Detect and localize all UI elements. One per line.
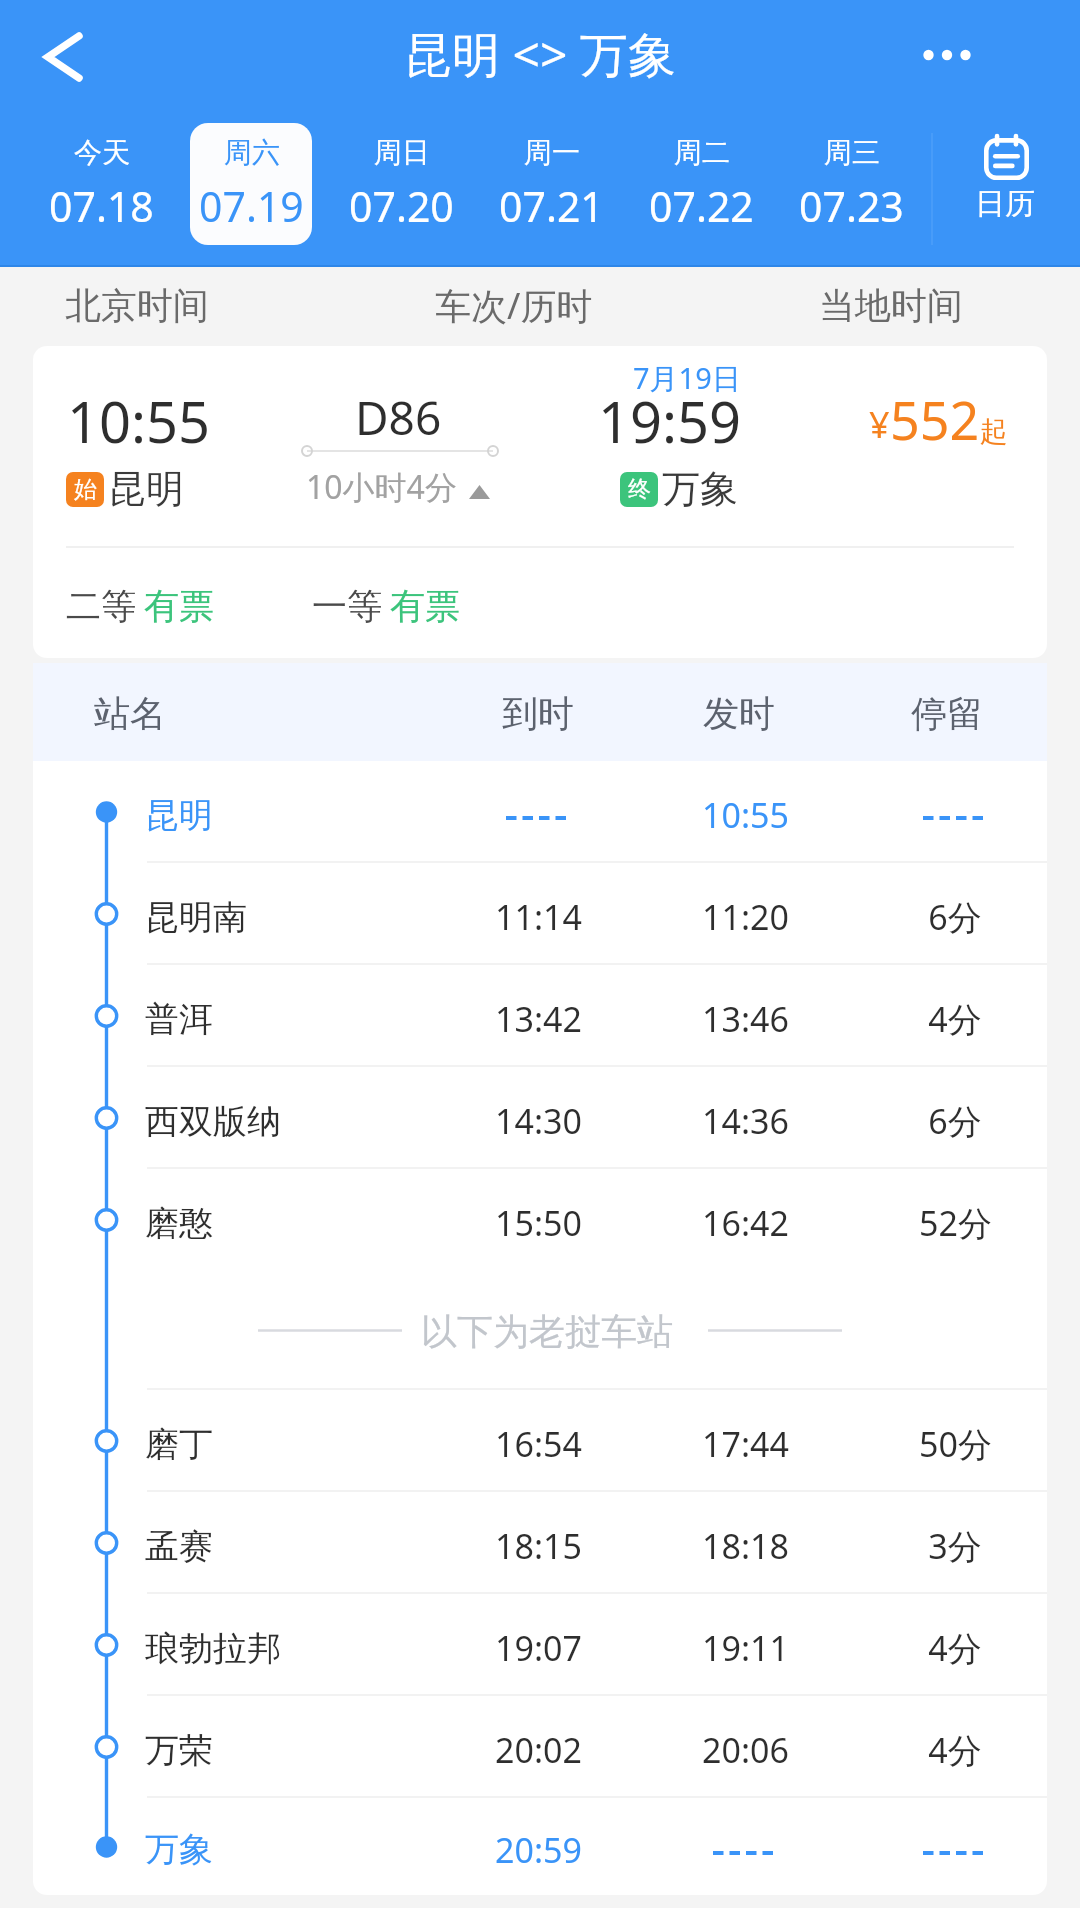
- staticText: 磨憨: [145, 1202, 213, 1245]
- button[interactable]: 10:55: [33, 346, 1047, 658]
- staticText: 10小时4分: [306, 465, 457, 509]
- staticText: 7月19日: [633, 358, 741, 398]
- staticText: 有票: [144, 584, 214, 628]
- staticText: 15:50: [495, 1200, 582, 1246]
- staticText: 6分: [928, 1098, 982, 1144]
- button[interactable]: 西双版纳: [33, 1067, 1047, 1169]
- staticText: 07.20: [349, 178, 454, 234]
- staticText: 万象: [662, 465, 738, 513]
- staticText: 16:42: [702, 1200, 789, 1246]
- staticText: 二等: [66, 584, 136, 628]
- staticText: 07.21: [499, 178, 604, 234]
- staticText: 11:20: [702, 894, 789, 940]
- button[interactable]: 今天: [26, 113, 176, 267]
- button[interactable]: 万象: [33, 1798, 1047, 1895]
- staticText: 4分: [928, 996, 982, 1042]
- button[interactable]: Back: [22, 17, 102, 97]
- staticText: 17:44: [702, 1421, 789, 1467]
- staticText: 13:46: [702, 996, 789, 1042]
- staticText: 14:36: [702, 1098, 789, 1144]
- staticText: 以下为老挝车站: [421, 1309, 673, 1354]
- button[interactable]: 琅勃拉邦: [33, 1594, 1047, 1696]
- staticText: ¥: [869, 400, 890, 449]
- button[interactable]: 周六: [176, 113, 326, 267]
- staticText: 11:14: [495, 894, 582, 940]
- staticText: 磨丁: [145, 1423, 213, 1466]
- staticText: 10:55: [67, 383, 211, 459]
- staticText: 起: [980, 414, 1008, 449]
- staticText: 4分: [928, 1625, 982, 1671]
- staticText: 孟赛: [145, 1525, 213, 1568]
- staticText: 昆明: [145, 794, 213, 837]
- staticText: 昆明: [108, 465, 184, 513]
- staticText: 普洱: [145, 998, 213, 1041]
- staticText: 万象: [145, 1828, 213, 1871]
- button[interactable]: 周一: [476, 113, 626, 267]
- staticText: 16:54: [495, 1421, 582, 1467]
- button[interactable]: Calendar: [935, 113, 1080, 267]
- staticText: 始: [74, 475, 97, 504]
- staticText: 周六: [224, 135, 280, 170]
- staticText: 552: [890, 384, 980, 455]
- button[interactable]: 普洱: [33, 965, 1047, 1067]
- staticText: 昆明南: [145, 896, 247, 939]
- button[interactable]: 磨憨: [33, 1169, 1047, 1271]
- staticText: 周三: [824, 135, 880, 170]
- staticText: 当地时间: [819, 283, 963, 328]
- staticText: 西双版纳: [145, 1100, 281, 1143]
- button[interactable]: 昆明南: [33, 863, 1047, 965]
- button[interactable]: 昆明: [33, 761, 1047, 863]
- staticText: 20:02: [495, 1727, 582, 1773]
- staticText: 万荣: [145, 1729, 213, 1772]
- staticText: 18:18: [702, 1523, 789, 1569]
- staticText: 3分: [928, 1523, 982, 1569]
- staticText: 19:59: [598, 383, 742, 459]
- staticText: 10:55: [702, 792, 789, 838]
- staticText: 19:11: [702, 1625, 789, 1671]
- staticText: 07.22: [649, 178, 754, 234]
- staticText: 19:07: [495, 1625, 582, 1671]
- staticText: 今天: [74, 135, 130, 170]
- staticText: 13:42: [495, 996, 582, 1042]
- staticText: 周日: [374, 135, 430, 170]
- button[interactable]: 周三: [776, 113, 926, 267]
- staticText: 到时: [502, 691, 574, 736]
- staticText: 昆明 <> 万象: [404, 21, 676, 87]
- button[interactable]: 周日: [326, 113, 476, 267]
- button[interactable]: 周二: [626, 113, 776, 267]
- staticText: 一等: [312, 584, 382, 628]
- staticText: 站名: [94, 691, 166, 736]
- staticText: 14:30: [495, 1098, 582, 1144]
- staticText: 4分: [928, 1727, 982, 1773]
- staticText: 停留: [911, 691, 983, 736]
- staticText: D86: [355, 386, 442, 449]
- staticText: 琅勃拉邦: [145, 1627, 281, 1670]
- button[interactable]: 万荣: [33, 1696, 1047, 1798]
- staticText: 07.18: [49, 178, 154, 234]
- staticText: 有票: [390, 584, 460, 628]
- staticText: 6分: [928, 894, 982, 940]
- staticText: 20:06: [702, 1727, 789, 1773]
- staticText: 发时: [703, 691, 775, 736]
- staticText: 07.19: [199, 178, 304, 234]
- staticText: 车次/历时: [435, 281, 593, 330]
- button[interactable]: 磨丁: [33, 1390, 1047, 1492]
- button[interactable]: 孟赛: [33, 1492, 1047, 1594]
- button[interactable]: More options: [907, 15, 987, 95]
- staticText: 07.23: [799, 178, 904, 234]
- staticText: 终: [628, 475, 651, 504]
- staticText: 北京时间: [65, 283, 209, 328]
- staticText: 50分: [919, 1421, 992, 1467]
- staticText: 18:15: [495, 1523, 582, 1569]
- staticText: 周二: [674, 135, 730, 170]
- staticText: 周一: [524, 135, 580, 170]
- staticText: 20:59: [495, 1827, 582, 1873]
- staticText: 52分: [919, 1200, 992, 1246]
- staticText: 日历: [975, 185, 1035, 223]
